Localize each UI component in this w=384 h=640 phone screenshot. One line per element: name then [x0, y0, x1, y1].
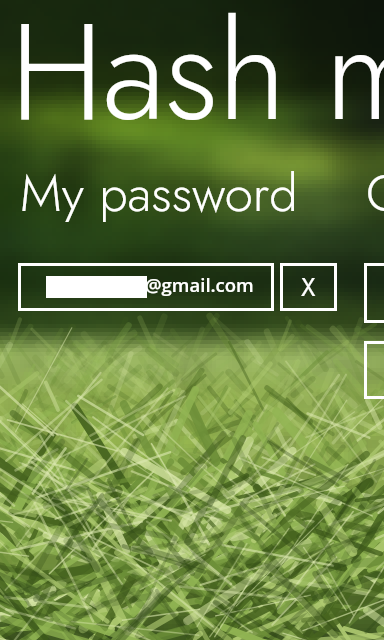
staticText: X [301, 268, 316, 306]
button[interactable]: @gmail.com [18, 263, 274, 311]
staticText: C [366, 156, 384, 230]
button[interactable]: More [364, 341, 384, 399]
staticText: @gmail.com [145, 272, 254, 297]
staticText: My password [20, 156, 298, 230]
button[interactable]: Next [364, 263, 384, 323]
button[interactable]: Clear [280, 263, 337, 311]
staticText: Hash me [10, 0, 384, 170]
